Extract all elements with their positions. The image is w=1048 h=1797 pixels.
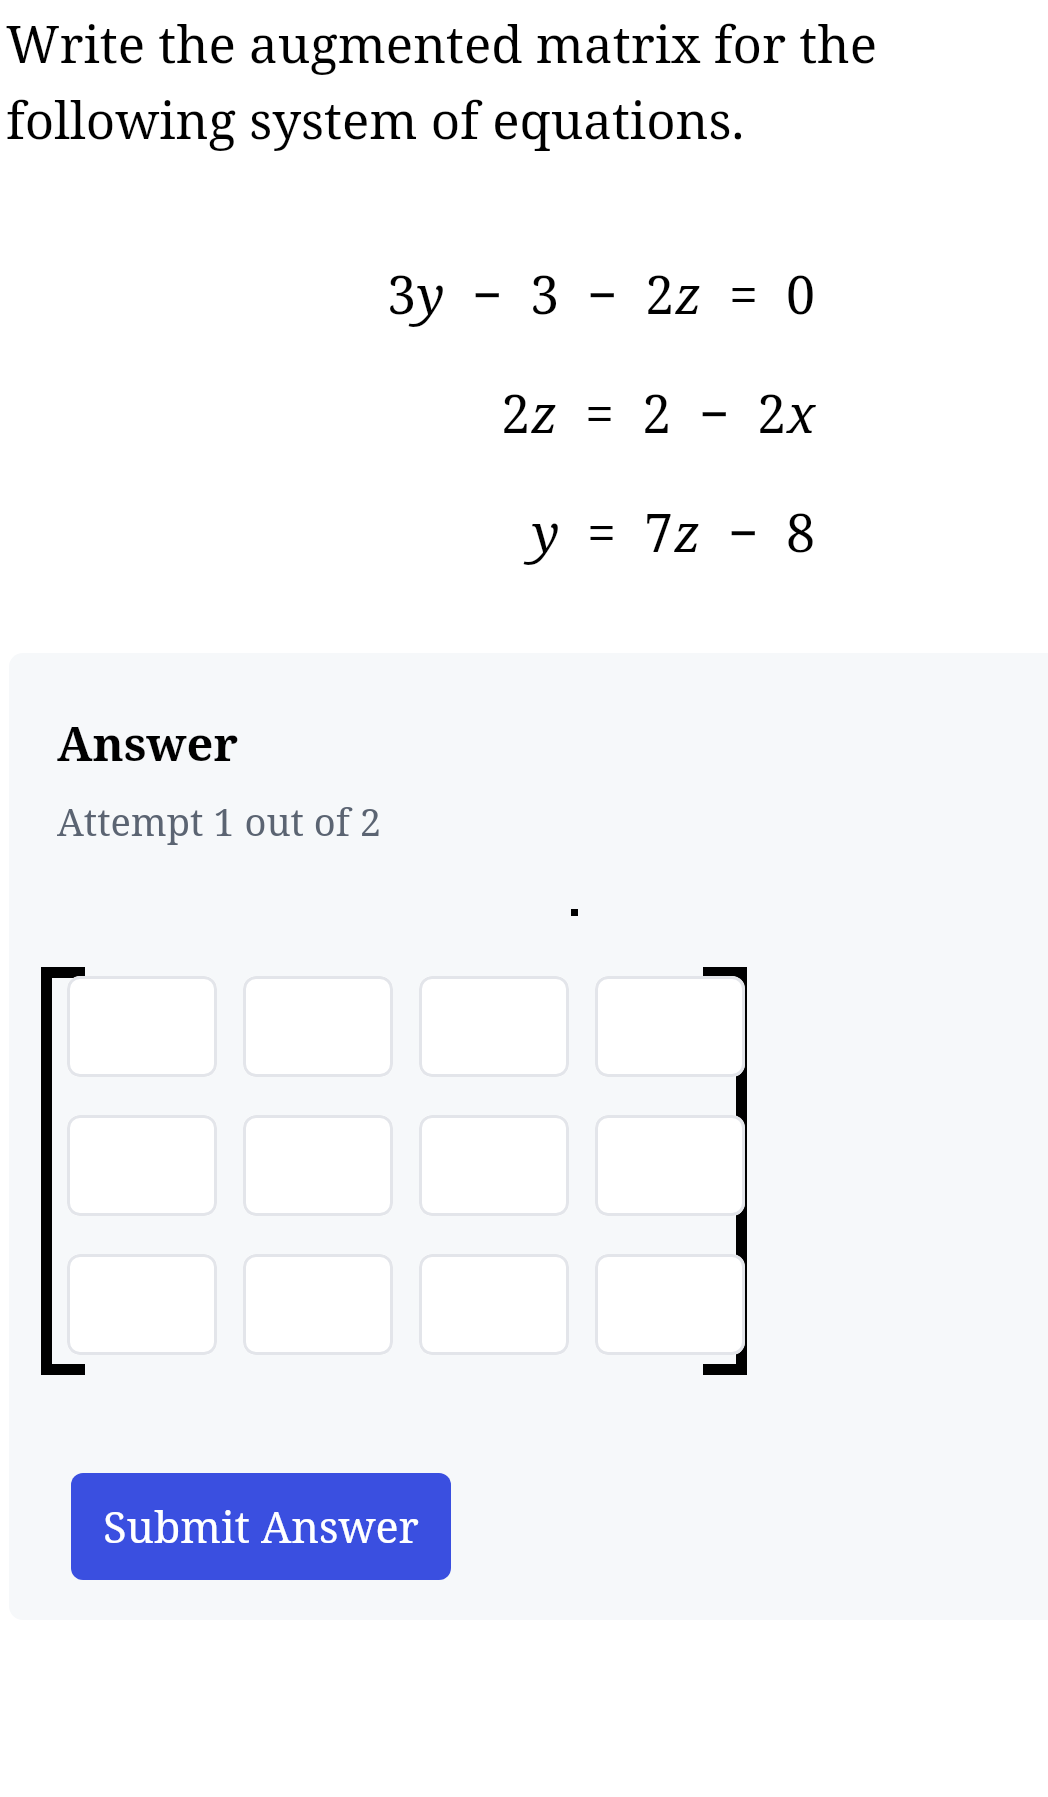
staticText: = bbox=[560, 496, 644, 567]
staticText: − bbox=[701, 496, 786, 567]
button[interactable]: Matrix entry bbox=[595, 1115, 745, 1216]
staticText: y bbox=[417, 258, 445, 329]
staticText: x bbox=[787, 377, 816, 448]
button[interactable]: Matrix entry bbox=[67, 1115, 217, 1216]
staticText: Write the augmented matrix for the follo… bbox=[6, 8, 1022, 154]
button[interactable]: Matrix entry bbox=[67, 1254, 217, 1355]
staticText: − bbox=[560, 258, 645, 329]
staticText: 3 bbox=[387, 258, 417, 329]
staticText: Submit Answer bbox=[103, 1497, 419, 1556]
staticText: z bbox=[674, 496, 701, 567]
button[interactable]: Matrix entry bbox=[595, 976, 745, 1077]
staticText: 2 bbox=[642, 377, 672, 448]
button[interactable]: Matrix entry bbox=[67, 976, 217, 1077]
button[interactable]: Submit Answer bbox=[71, 1473, 451, 1580]
button[interactable]: Matrix entry bbox=[419, 1254, 569, 1355]
staticText: z bbox=[531, 377, 558, 448]
staticText: 2 bbox=[645, 258, 675, 329]
button[interactable]: Matrix entry bbox=[243, 976, 393, 1077]
staticText: 3 bbox=[530, 258, 560, 329]
staticText: 2 bbox=[501, 377, 531, 448]
staticText: z bbox=[675, 258, 702, 329]
staticText: Attempt 1 out of 2 bbox=[57, 795, 381, 847]
button[interactable]: Matrix entry bbox=[595, 1254, 745, 1355]
staticText: 0 bbox=[786, 258, 816, 329]
button[interactable]: Matrix entry bbox=[419, 1115, 569, 1216]
staticText: = bbox=[702, 258, 786, 329]
staticText: − bbox=[672, 377, 757, 448]
staticText: 8 bbox=[786, 496, 816, 567]
button[interactable]: Matrix entry bbox=[419, 976, 569, 1077]
staticText: 7 bbox=[644, 496, 674, 567]
staticText: 2 bbox=[757, 377, 787, 448]
staticText: y bbox=[532, 496, 560, 567]
button[interactable]: Matrix entry bbox=[243, 1254, 393, 1355]
staticText: Answer bbox=[57, 711, 239, 775]
staticText: = bbox=[558, 377, 642, 448]
button[interactable]: Matrix entry bbox=[243, 1115, 393, 1216]
staticText: − bbox=[445, 258, 530, 329]
